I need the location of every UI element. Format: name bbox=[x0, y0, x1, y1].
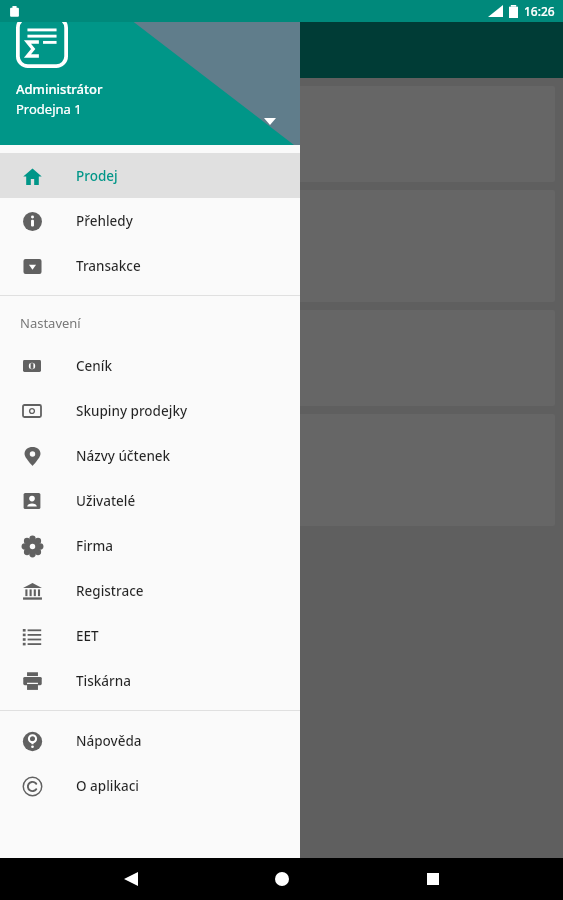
button[interactable]: Recents bbox=[412, 858, 454, 900]
button[interactable]: Názvy účtenek bbox=[0, 433, 300, 478]
staticText: Nastavení bbox=[20, 314, 81, 332]
staticText: Ceník bbox=[76, 357, 112, 375]
staticText: Administrátor bbox=[16, 80, 103, 98]
staticText: Transakce bbox=[76, 257, 141, 275]
button[interactable]: částka a DPH. Jedná se o kalkulačku, bbox=[8, 86, 555, 182]
button[interactable]: Prodej bbox=[0, 153, 300, 198]
staticText: 16:26 bbox=[524, 3, 555, 19]
button[interactable]: Back bbox=[110, 858, 152, 900]
staticText: Prodej bbox=[76, 167, 118, 185]
staticText: Registrace bbox=[76, 582, 144, 600]
button[interactable]: Firma bbox=[0, 523, 300, 568]
button[interactable]: Tiskárna bbox=[0, 658, 300, 703]
staticText: Skupiny prodejky bbox=[76, 402, 188, 420]
staticText: Nápověda bbox=[76, 732, 142, 750]
button[interactable]: Ceník bbox=[0, 343, 300, 388]
button[interactable]: Home bbox=[261, 858, 303, 900]
staticText: Prodejna 1 bbox=[16, 100, 82, 118]
button[interactable]: Skupiny prodejky bbox=[0, 388, 300, 433]
staticText: Názvy účtenek bbox=[76, 447, 171, 465]
button[interactable]: Na vytištěné prodejce je uvedeno zboží s bbox=[8, 190, 555, 302]
button[interactable]: účtěném paragonu je uvedeno zboží s bbox=[8, 310, 555, 406]
button[interactable]: Registrace bbox=[0, 568, 300, 613]
staticText: prodejů (objednávek). Na účtence lze bbox=[22, 461, 248, 479]
button[interactable]: prodejů (objednávek). Na účtence lze bbox=[8, 414, 555, 526]
button[interactable]: Transakce bbox=[0, 243, 300, 288]
staticText: částka a DPH. Jedná se o kalkulačku, bbox=[22, 116, 243, 134]
staticText: Uživatelé bbox=[76, 492, 136, 510]
button[interactable]: O aplikaci bbox=[0, 763, 300, 808]
button[interactable]: Přehledy bbox=[0, 198, 300, 243]
button[interactable]: Uživatelé bbox=[0, 478, 300, 523]
button[interactable]: Switch account bbox=[258, 109, 282, 133]
staticText: EET bbox=[76, 627, 99, 645]
staticText: účtěném paragonu je uvedeno zboží s bbox=[22, 349, 254, 367]
staticText: ceníkem. bbox=[22, 134, 77, 152]
button[interactable]: EET bbox=[0, 613, 300, 658]
staticText: Přehledy bbox=[76, 212, 133, 230]
button[interactable]: Nápověda bbox=[0, 718, 300, 763]
staticText: Tiskárna bbox=[76, 672, 131, 690]
staticText: O aplikaci bbox=[76, 777, 140, 795]
staticText: Firma bbox=[76, 537, 113, 555]
